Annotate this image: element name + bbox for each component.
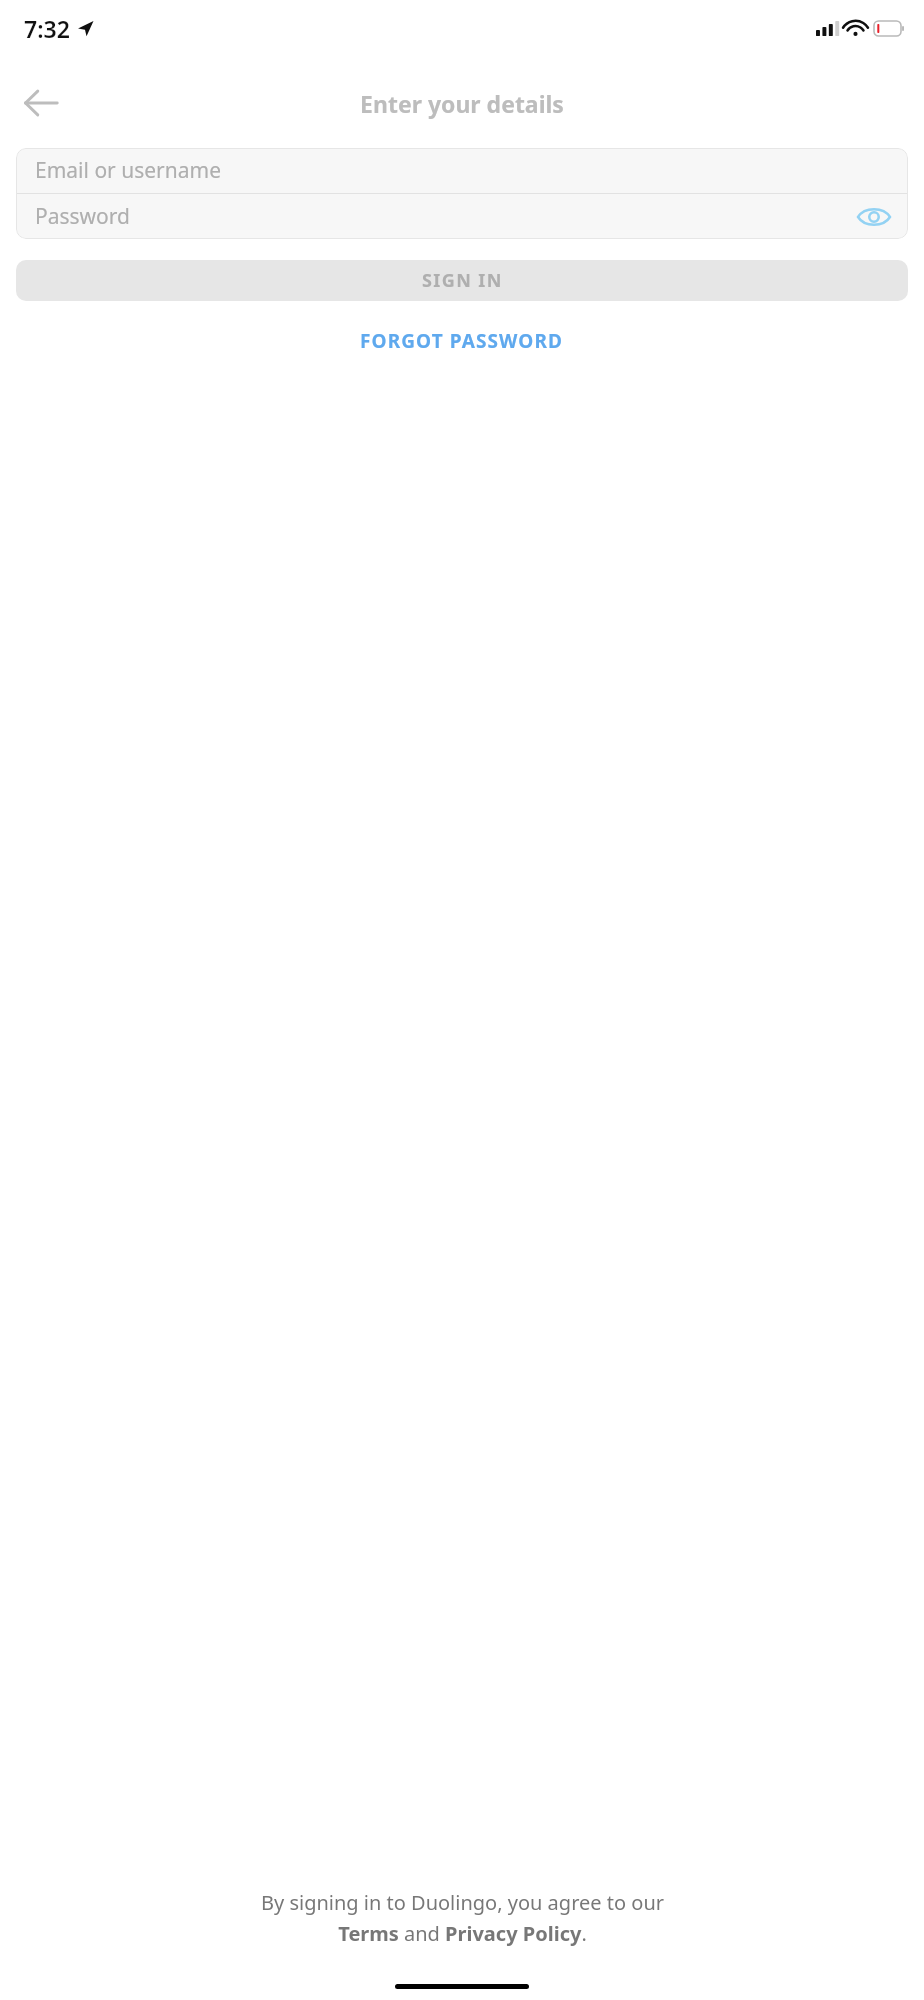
staticText: 7:32 xyxy=(24,13,70,44)
button[interactable]: Show password xyxy=(852,195,896,239)
staticText: SIGN IN xyxy=(422,268,503,293)
staticText: Enter your details xyxy=(360,88,564,119)
button[interactable]: FORGOT PASSWORD xyxy=(0,320,924,362)
staticText: By signing in to Duolingo, you agree to … xyxy=(261,1889,664,1946)
button[interactable]: By signing in to Duolingo, you agree to … xyxy=(24,1889,900,1946)
staticText: Password xyxy=(35,202,130,231)
staticText: FORGOT PASSWORD xyxy=(360,328,564,354)
button[interactable]: Back xyxy=(18,80,64,126)
button[interactable]: Email or username xyxy=(16,148,908,193)
staticText: Email or username xyxy=(35,156,222,185)
button[interactable]: Password xyxy=(16,194,908,239)
button[interactable]: SIGN IN xyxy=(16,260,908,301)
